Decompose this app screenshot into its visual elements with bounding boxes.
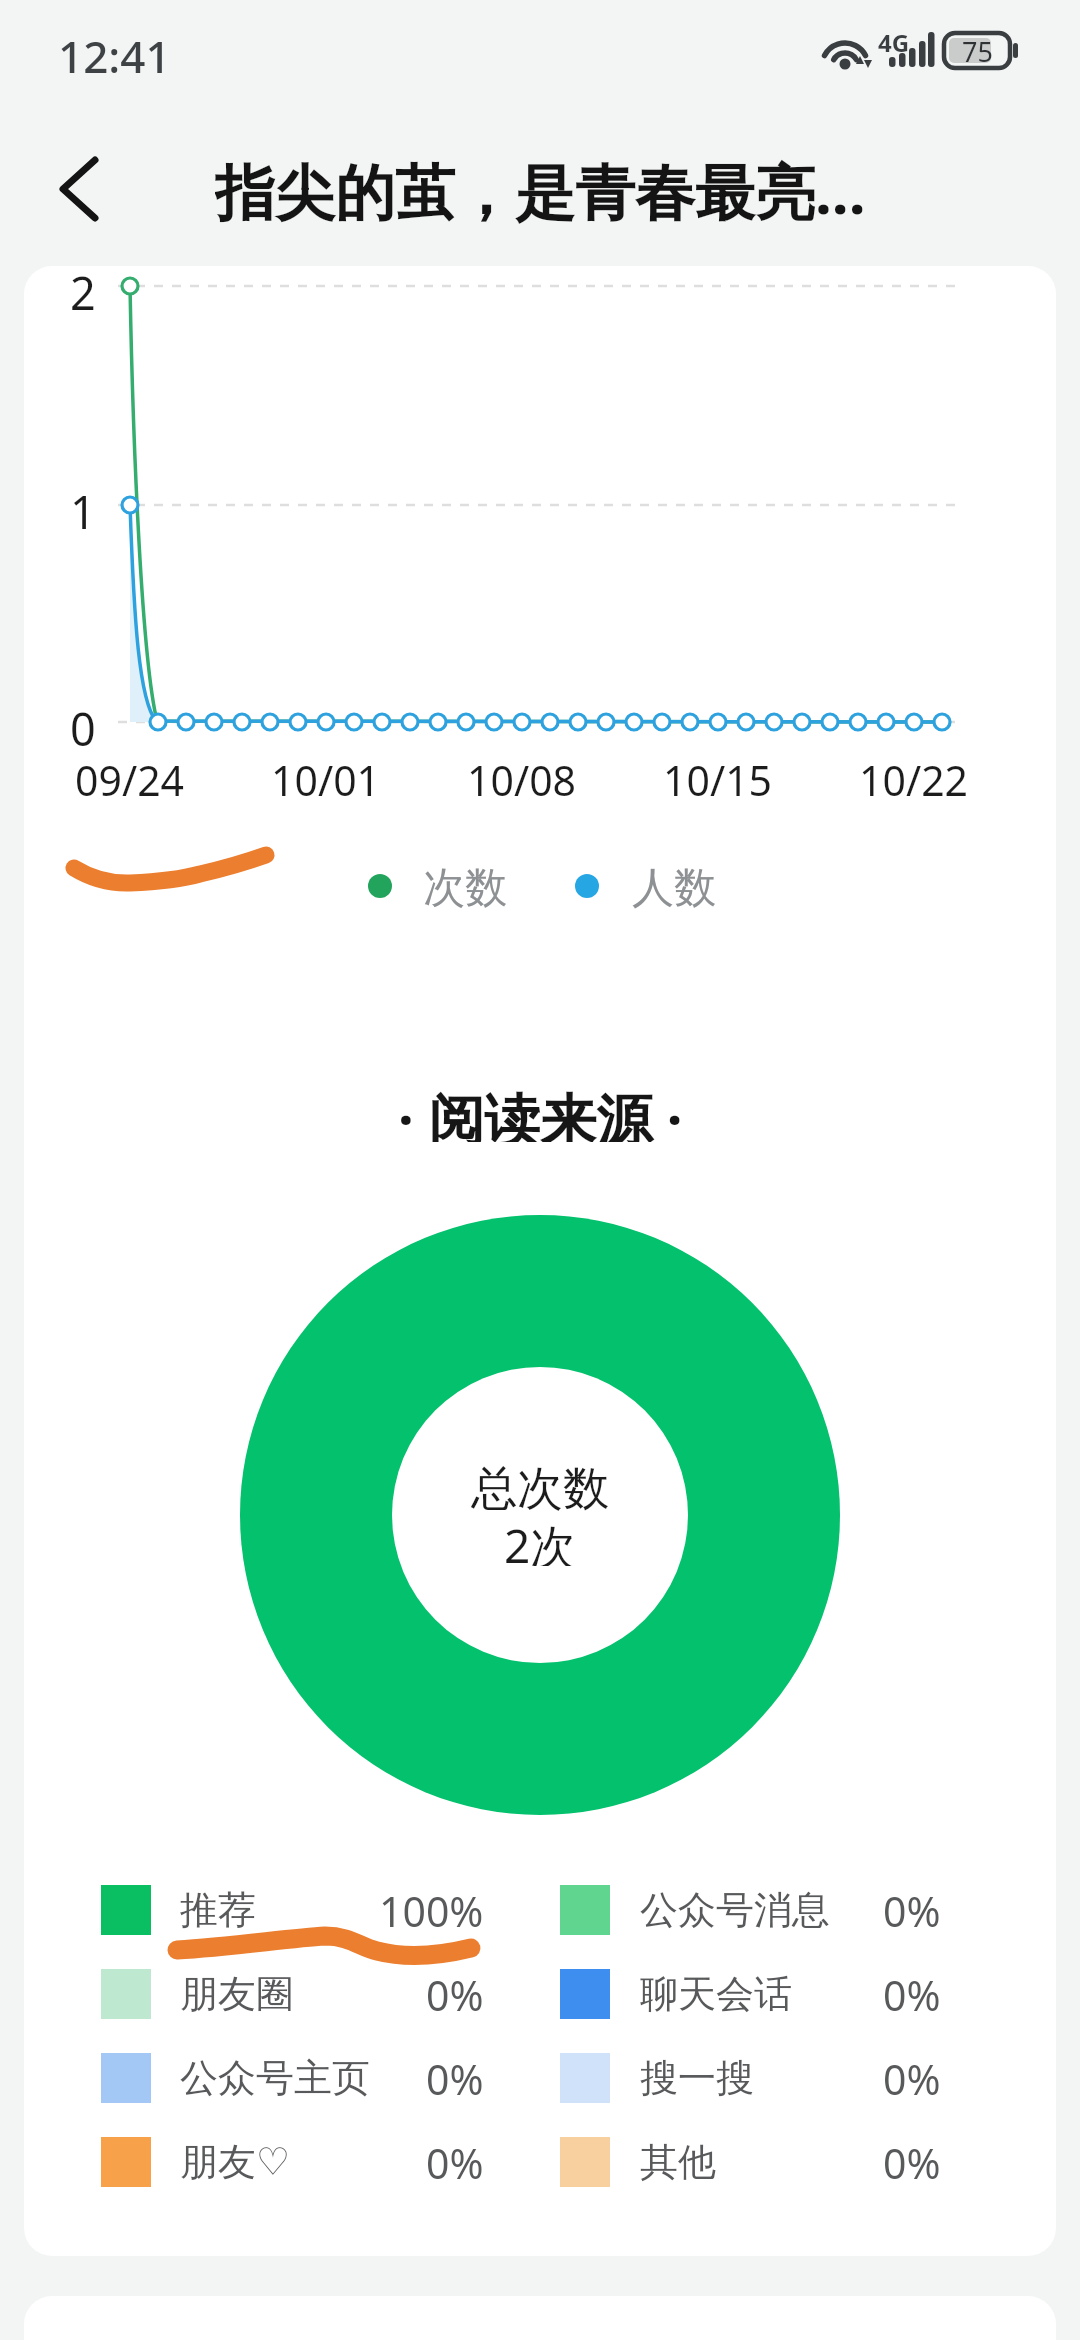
- staticText: 公众号消息: [640, 1886, 830, 1934]
- staticText: 0%: [426, 2135, 484, 2189]
- staticText: 12:41: [58, 26, 171, 78]
- staticText: 10/08: [467, 752, 577, 802]
- staticText: 0%: [883, 1883, 941, 1937]
- staticText: 75: [962, 33, 993, 68]
- staticText: 搜一搜: [640, 2054, 754, 2102]
- staticText: 4G: [878, 26, 910, 54]
- staticText: 聊天会话: [640, 1970, 792, 2018]
- staticText: 10/22: [859, 752, 969, 802]
- staticText: 0: [70, 698, 96, 746]
- staticText: 1: [70, 481, 96, 529]
- button[interactable]: [100, 2135, 490, 2187]
- staticText: 次数: [423, 862, 507, 910]
- staticText: 2: [70, 262, 96, 310]
- staticText: · 阅读来源 ·: [398, 1080, 683, 1142]
- button[interactable]: [40, 142, 130, 236]
- staticText: 公众号主页: [180, 2054, 370, 2102]
- staticText: 100%: [379, 1883, 484, 1937]
- staticText: 朋友♡: [180, 2138, 291, 2186]
- staticText: 指尖的茧，是青春最亮...: [215, 150, 866, 226]
- staticText: 推荐: [180, 1886, 256, 1934]
- staticText: 0%: [426, 1967, 484, 2021]
- button[interactable]: [100, 1883, 490, 1935]
- staticText: 其他: [640, 2138, 716, 2186]
- staticText: 0%: [883, 2051, 941, 2105]
- staticText: 0%: [883, 1967, 941, 2021]
- staticText: 2次: [504, 1514, 577, 1566]
- staticText: 0%: [426, 2051, 484, 2105]
- staticText: 10/01: [271, 752, 381, 802]
- staticText: 0%: [883, 2135, 941, 2189]
- staticText: 10/15: [663, 752, 773, 802]
- staticText: 总次数: [471, 1460, 609, 1512]
- button[interactable]: [100, 1967, 490, 2019]
- staticText: 人数: [632, 862, 716, 910]
- button[interactable]: [100, 2051, 490, 2103]
- staticText: 09/24: [75, 752, 185, 802]
- staticText: 朋友圈: [180, 1970, 294, 2018]
